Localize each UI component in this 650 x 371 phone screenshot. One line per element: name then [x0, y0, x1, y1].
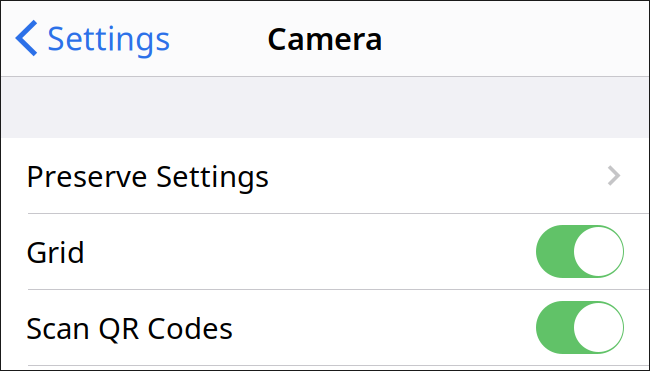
- button[interactable]: Grid: [536, 225, 624, 278]
- staticText: Grid: [26, 232, 85, 271]
- button[interactable]: Scan QR Codes: [536, 301, 624, 354]
- button[interactable]: Preserve Settings: [0, 138, 650, 214]
- staticText: Scan QR Codes: [26, 308, 233, 347]
- staticText: Preserve Settings: [26, 156, 269, 195]
- button[interactable]: Settings: [0, 0, 182, 76]
- staticText: Settings: [47, 17, 170, 59]
- staticText: Camera: [267, 18, 383, 58]
